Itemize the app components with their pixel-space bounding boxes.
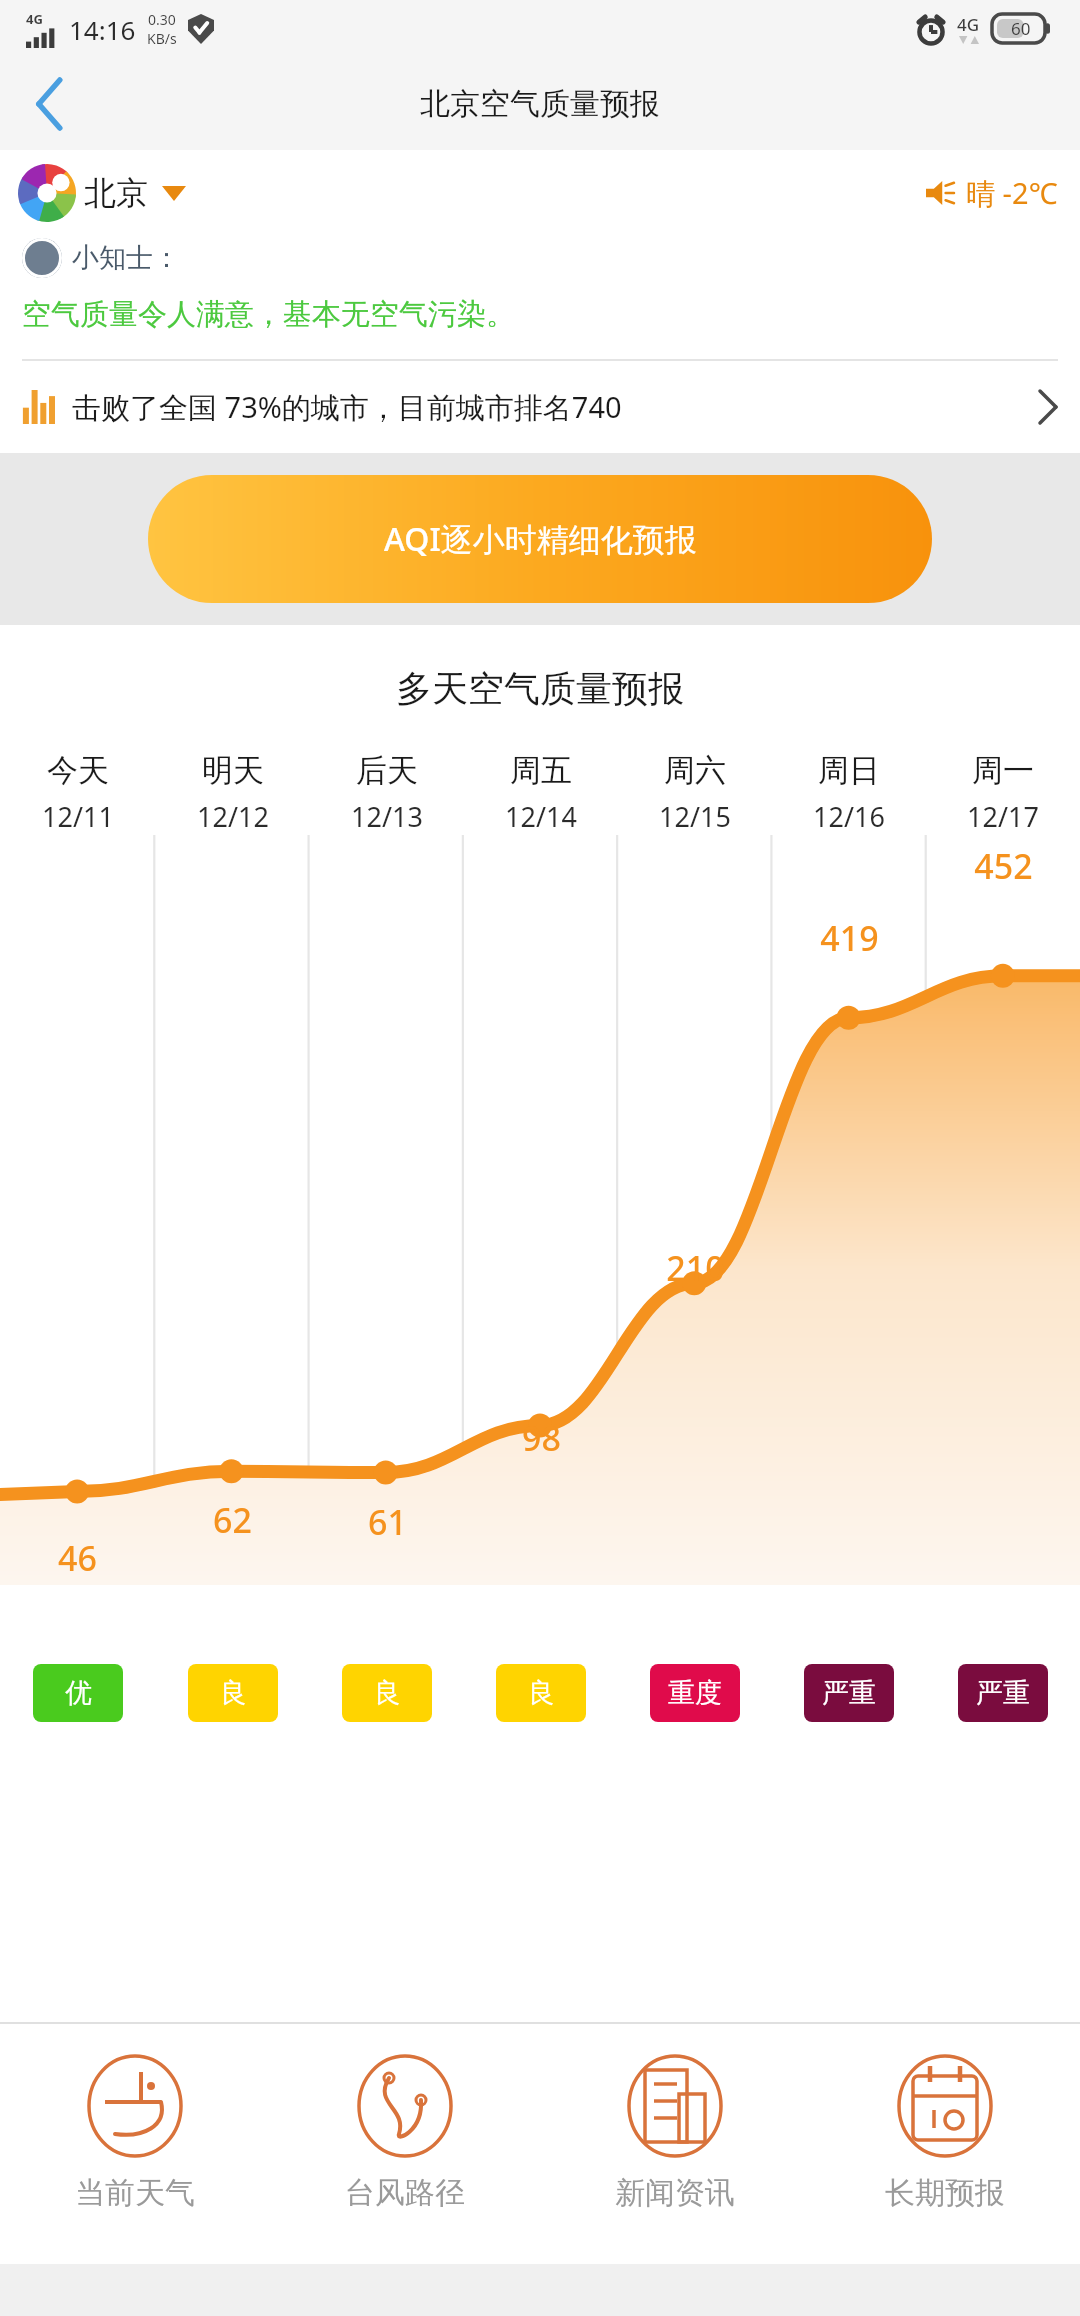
button[interactable]: 良 xyxy=(188,1664,278,1722)
staticText: 长期预报 xyxy=(885,2174,1005,2212)
button[interactable]: 台风路径 xyxy=(270,2024,540,2264)
staticText: 周日 xyxy=(818,751,880,790)
staticText: 12/13 xyxy=(351,798,423,835)
staticText: 周一 xyxy=(972,751,1034,790)
button[interactable]: 良 xyxy=(496,1664,586,1722)
staticText: 4G xyxy=(26,10,43,28)
staticText: 优 xyxy=(65,1676,92,1710)
staticText: KB/s xyxy=(147,29,177,48)
staticText: 60 xyxy=(1011,17,1031,40)
staticText: 61 xyxy=(368,1499,407,1545)
button[interactable]: Back xyxy=(0,57,100,150)
staticText: 重度 xyxy=(668,1676,722,1710)
staticText: 12/16 xyxy=(813,798,885,835)
staticText: 12/11 xyxy=(42,798,114,835)
staticText: 良 xyxy=(220,1676,247,1710)
staticText: 明天 xyxy=(202,751,264,790)
button[interactable]: 严重 xyxy=(958,1664,1048,1722)
button[interactable]: 长期预报 xyxy=(810,2024,1080,2264)
staticText: 12/12 xyxy=(197,798,269,835)
button[interactable]: AQI逐小时精细化预报 xyxy=(148,475,932,603)
button[interactable]: 良 xyxy=(342,1664,432,1722)
staticText: 后天 xyxy=(356,751,418,790)
staticText: 良 xyxy=(528,1676,555,1710)
button[interactable]: 晴 -2℃ xyxy=(926,173,1058,213)
staticText: 良 xyxy=(374,1676,401,1710)
staticText: 12/14 xyxy=(505,798,577,835)
staticText: 周五 xyxy=(510,751,572,790)
button[interactable]: 优 xyxy=(33,1664,123,1722)
staticText: 12/15 xyxy=(659,798,731,835)
staticText: 晴 -2℃ xyxy=(966,173,1058,213)
staticText: 击败了全国 73%的城市，目前城市排名740 xyxy=(72,387,622,427)
staticText: 419 xyxy=(820,915,879,961)
staticText: 4G xyxy=(957,13,980,36)
staticText: 62 xyxy=(213,1497,252,1543)
staticText: 周六 xyxy=(664,751,726,790)
staticText: 46 xyxy=(58,1535,97,1581)
staticText: 小知士： xyxy=(72,241,180,275)
staticText: 98 xyxy=(522,1415,561,1461)
staticText: 14:16 xyxy=(69,12,136,47)
button[interactable]: 当前天气 xyxy=(0,2024,270,2264)
staticText: 12/17 xyxy=(967,798,1039,835)
staticText: AQI逐小时精细化预报 xyxy=(384,517,697,561)
button[interactable]: 新闻资讯 xyxy=(540,2024,810,2264)
staticText: 多天空气质量预报 xyxy=(396,666,684,711)
staticText: 今天 xyxy=(47,751,109,790)
staticText: 210 xyxy=(666,1245,725,1291)
staticText: 空气质量令人满意，基本无空气污染。 xyxy=(22,296,515,333)
button[interactable]: 北京 xyxy=(18,164,186,222)
button[interactable]: 重度 xyxy=(650,1664,740,1722)
staticText: 新闻资讯 xyxy=(615,2174,735,2212)
staticText: 452 xyxy=(974,843,1033,889)
staticText: 北京 xyxy=(84,173,148,213)
staticText: 北京空气质量预报 xyxy=(420,85,660,123)
staticText: 0.30 xyxy=(148,10,176,29)
staticText: 台风路径 xyxy=(345,2174,465,2212)
staticText: 当前天气 xyxy=(75,2174,195,2212)
button[interactable]: 严重 xyxy=(804,1664,894,1722)
staticText: 严重 xyxy=(976,1676,1030,1710)
button[interactable]: 击败了全国 73%的城市，目前城市排名740 xyxy=(0,361,1080,453)
staticText: 严重 xyxy=(822,1676,876,1710)
